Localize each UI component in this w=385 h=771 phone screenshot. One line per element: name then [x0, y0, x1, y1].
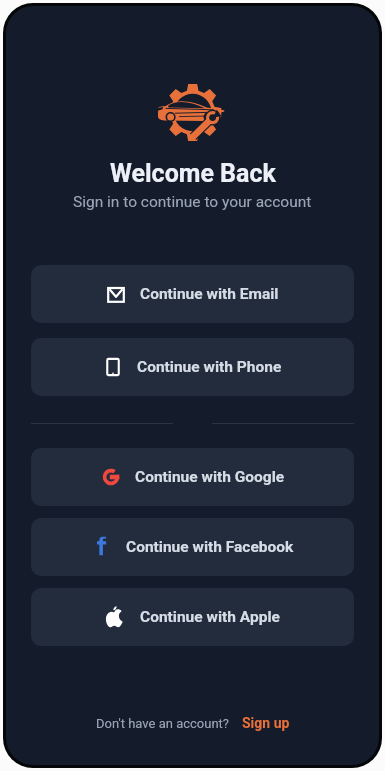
- staticText: Sign up: [242, 715, 290, 731]
- staticText: Don't have an account?: [96, 716, 229, 731]
- staticText: Welcome Back: [110, 159, 276, 188]
- button[interactable]: Continue with Apple: [31, 588, 354, 646]
- button[interactable]: Continue with Google: [31, 448, 354, 506]
- staticText: Continue with Facebook: [126, 538, 294, 556]
- button[interactable]: Continue with Phone: [31, 338, 354, 396]
- staticText: Continue with Apple: [140, 608, 280, 626]
- staticText: Continue with Phone: [137, 358, 282, 376]
- button[interactable]: Sign up: [242, 715, 290, 731]
- button[interactable]: Continue with Email: [31, 265, 354, 323]
- staticText: Continue with Email: [140, 285, 279, 303]
- staticText: Continue with Google: [135, 468, 285, 486]
- staticText: Sign in to continue to your account: [73, 193, 312, 211]
- button[interactable]: Continue with Facebook: [31, 518, 354, 576]
